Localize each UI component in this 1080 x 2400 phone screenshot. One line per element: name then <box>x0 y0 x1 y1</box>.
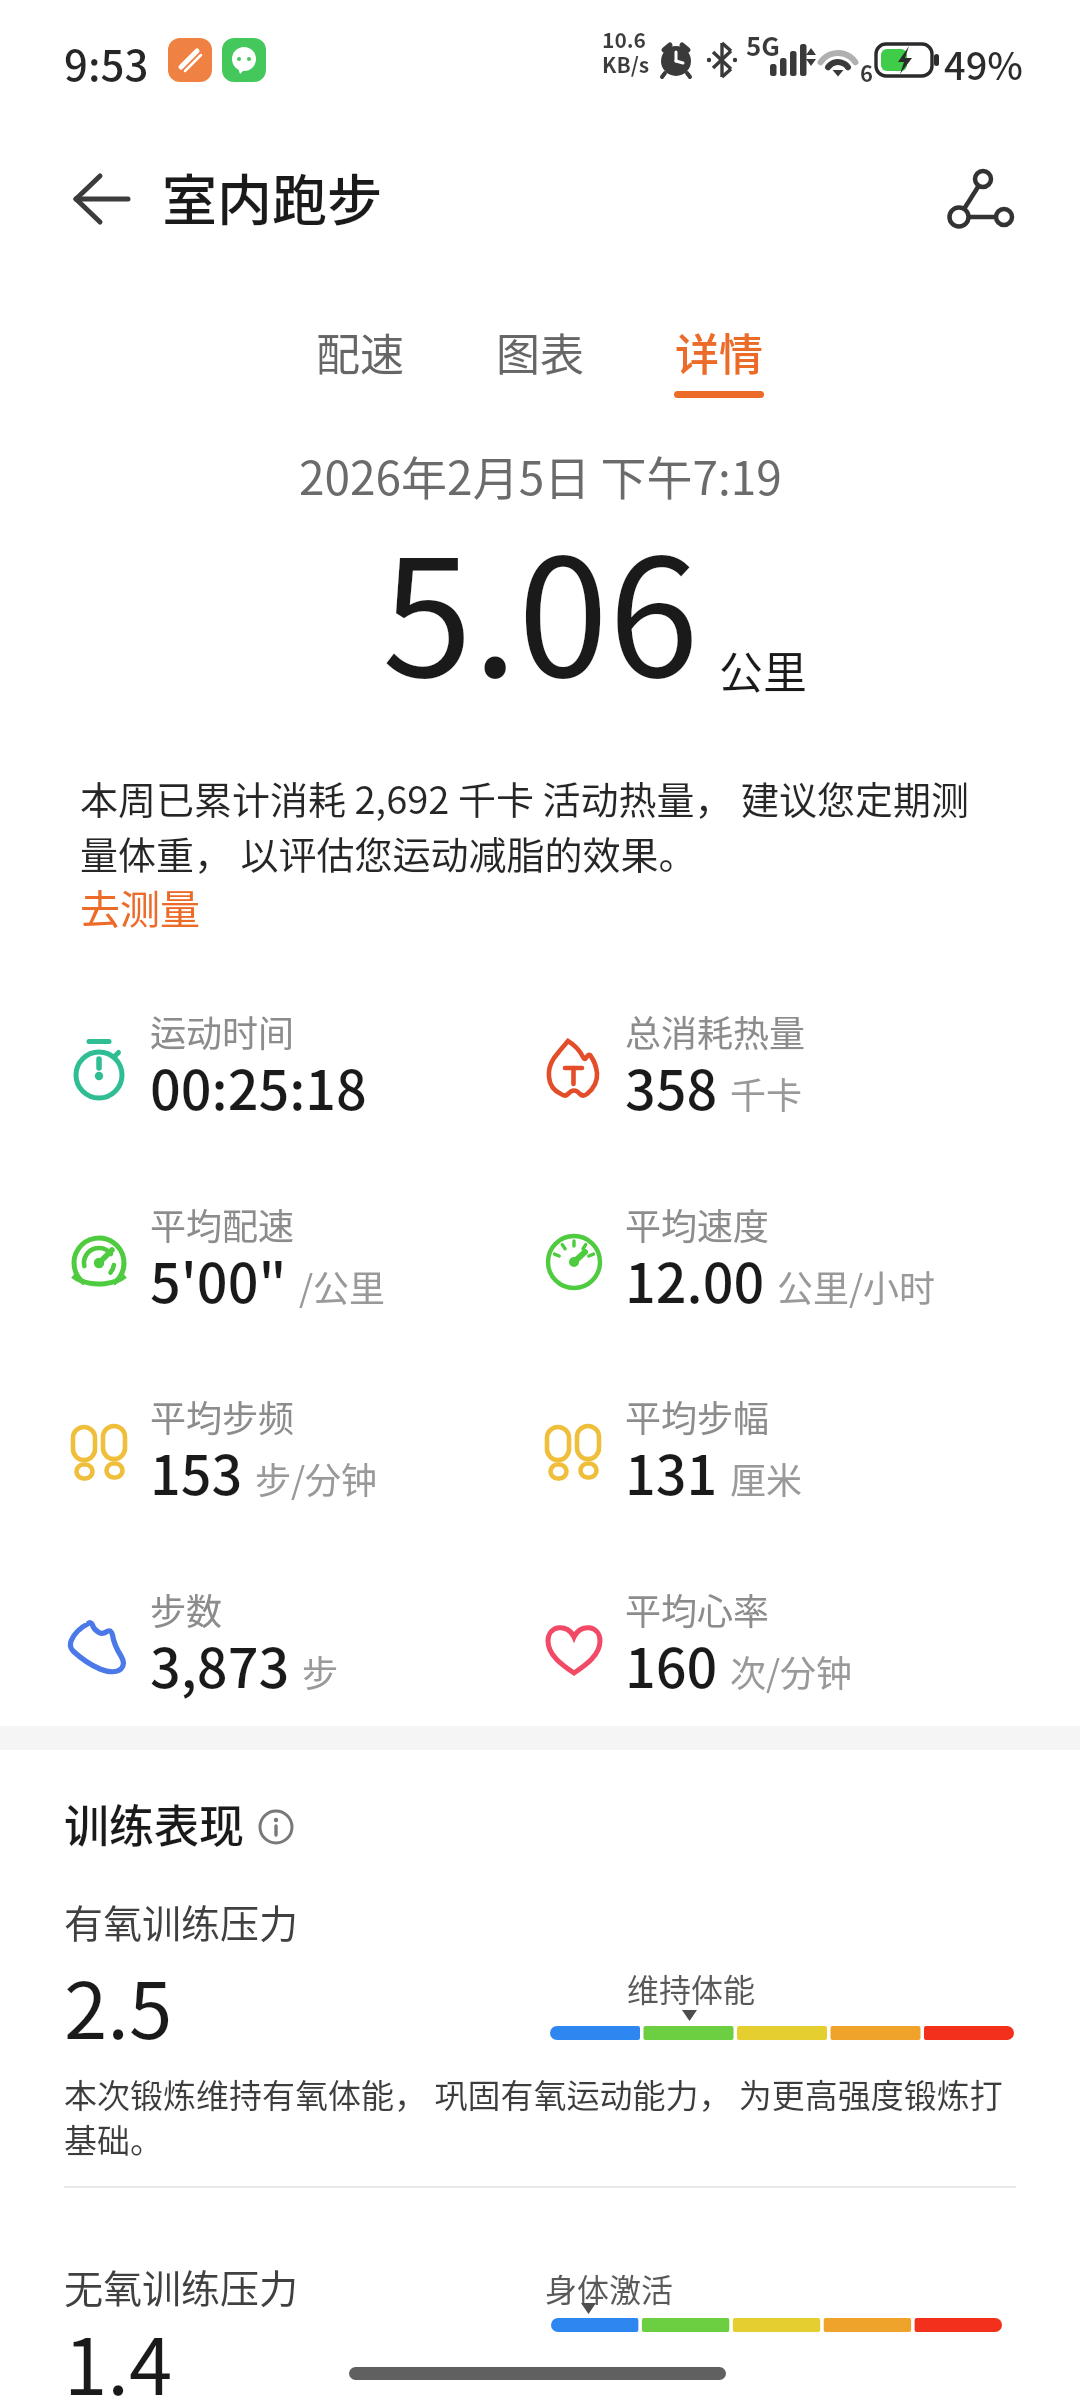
staticText: 去测量 <box>80 878 200 936</box>
staticText: 3,873 <box>150 1625 290 1703</box>
staticText: 平均配速 <box>150 1198 295 1250</box>
staticText: 公里 <box>719 638 807 702</box>
staticText: 9:53 <box>64 32 149 93</box>
staticText: 131 <box>625 1432 718 1510</box>
staticText: 160 <box>625 1625 718 1703</box>
staticText: 49% <box>944 36 1024 91</box>
staticText: 本次锻炼维持有氧体能， 巩固有氧运动能力， 为更高强度锻炼打 基础。 <box>64 2070 1003 2163</box>
staticText: 步 <box>302 1645 339 1697</box>
staticText: /公里 <box>299 1260 386 1312</box>
staticText: 358 <box>625 1047 718 1125</box>
staticText: 5'00" <box>150 1240 287 1318</box>
staticText: 平均心率 <box>625 1583 770 1635</box>
staticText: 厘米 <box>730 1452 803 1504</box>
staticText: 00:25:18 <box>150 1047 367 1125</box>
staticText: 1.4 <box>64 2305 173 2400</box>
staticText: 配速 <box>316 320 404 384</box>
button[interactable] <box>56 160 136 240</box>
staticText: 图表 <box>496 320 584 384</box>
staticText: 5G <box>746 26 780 64</box>
staticText: 2.5 <box>64 1949 173 2062</box>
staticText: 步/分钟 <box>255 1452 378 1504</box>
button[interactable]: 去测量 <box>80 878 200 936</box>
staticText: 平均速度 <box>625 1198 770 1250</box>
button[interactable]: 配速 <box>280 320 440 384</box>
staticText: 2026年2月5日 下午7:19 <box>299 442 782 509</box>
staticText: 6 <box>860 56 873 88</box>
button[interactable] <box>935 155 1025 245</box>
staticText: 10.6 KB/s <box>602 24 650 79</box>
staticText: 153 <box>150 1432 243 1510</box>
staticText: 运动时间 <box>150 1005 295 1057</box>
staticText: 总消耗热量 <box>625 1005 806 1057</box>
staticText: 本周已累计消耗 2,692 千卡 活动热量， 建议您定期测 量体重， 以评估您运… <box>80 770 969 880</box>
staticText: 维持体能 <box>627 1965 756 2011</box>
staticText: 无氧训练压力 <box>64 2258 299 2314</box>
staticText: 5.06 <box>382 488 699 724</box>
staticText: 详情 <box>675 320 763 384</box>
button[interactable]: 详情 <box>639 320 799 384</box>
staticText: 12.00 <box>625 1240 765 1318</box>
staticText: 室内跑步 <box>162 156 383 236</box>
staticText: 平均步频 <box>150 1390 295 1442</box>
staticText: 千卡 <box>730 1067 803 1119</box>
staticText: 步数 <box>150 1583 223 1635</box>
staticText: 公里/小时 <box>777 1260 936 1312</box>
staticText: 有氧训练压力 <box>64 1893 299 1949</box>
staticText: 训练表现 <box>64 1791 245 1856</box>
staticText: 平均步幅 <box>625 1390 770 1442</box>
staticText: 次/分钟 <box>730 1645 853 1697</box>
staticText: 身体激活 <box>545 2265 674 2311</box>
button[interactable]: 图表 <box>460 320 620 384</box>
